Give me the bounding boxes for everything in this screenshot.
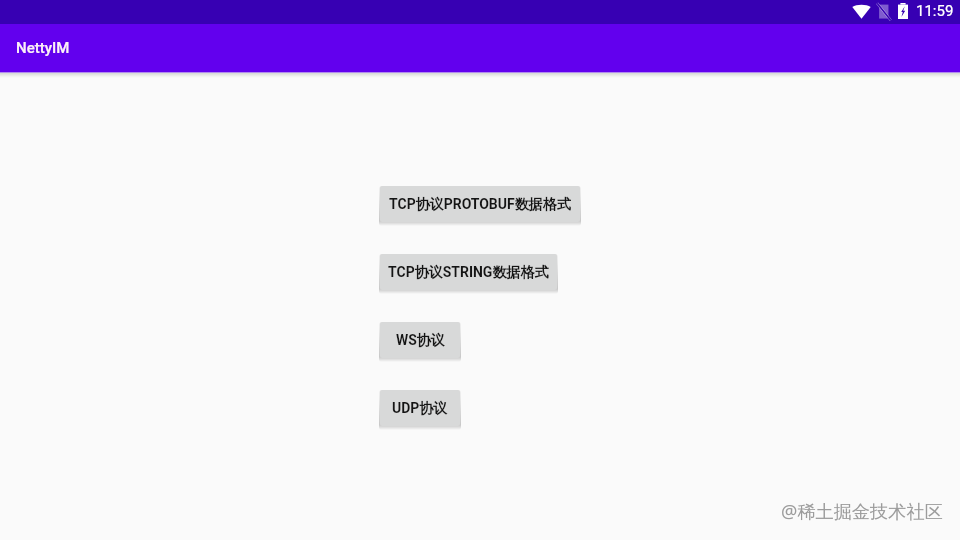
other: Wifi bbox=[852, 4, 871, 19]
other: Battery charging bbox=[898, 3, 908, 19]
other: No SIM card bbox=[878, 4, 889, 19]
button[interactable]: TCP协议PROTOBUF数据格式 bbox=[380, 186, 580, 222]
staticText: 11:59 bbox=[916, 2, 954, 20]
staticText: WS协议 bbox=[396, 332, 445, 350]
staticText: TCP协议STRING数据格式 bbox=[388, 264, 549, 282]
button[interactable]: WS协议 bbox=[380, 322, 460, 358]
staticText: UDP协议 bbox=[392, 400, 448, 418]
staticText: TCP协议PROTOBUF数据格式 bbox=[389, 196, 571, 214]
staticText: @稀土掘金技术社区 bbox=[781, 499, 943, 524]
button[interactable]: TCP协议STRING数据格式 bbox=[380, 254, 557, 290]
staticText: NettyIM bbox=[16, 39, 70, 57]
button[interactable]: UDP协议 bbox=[380, 390, 460, 426]
